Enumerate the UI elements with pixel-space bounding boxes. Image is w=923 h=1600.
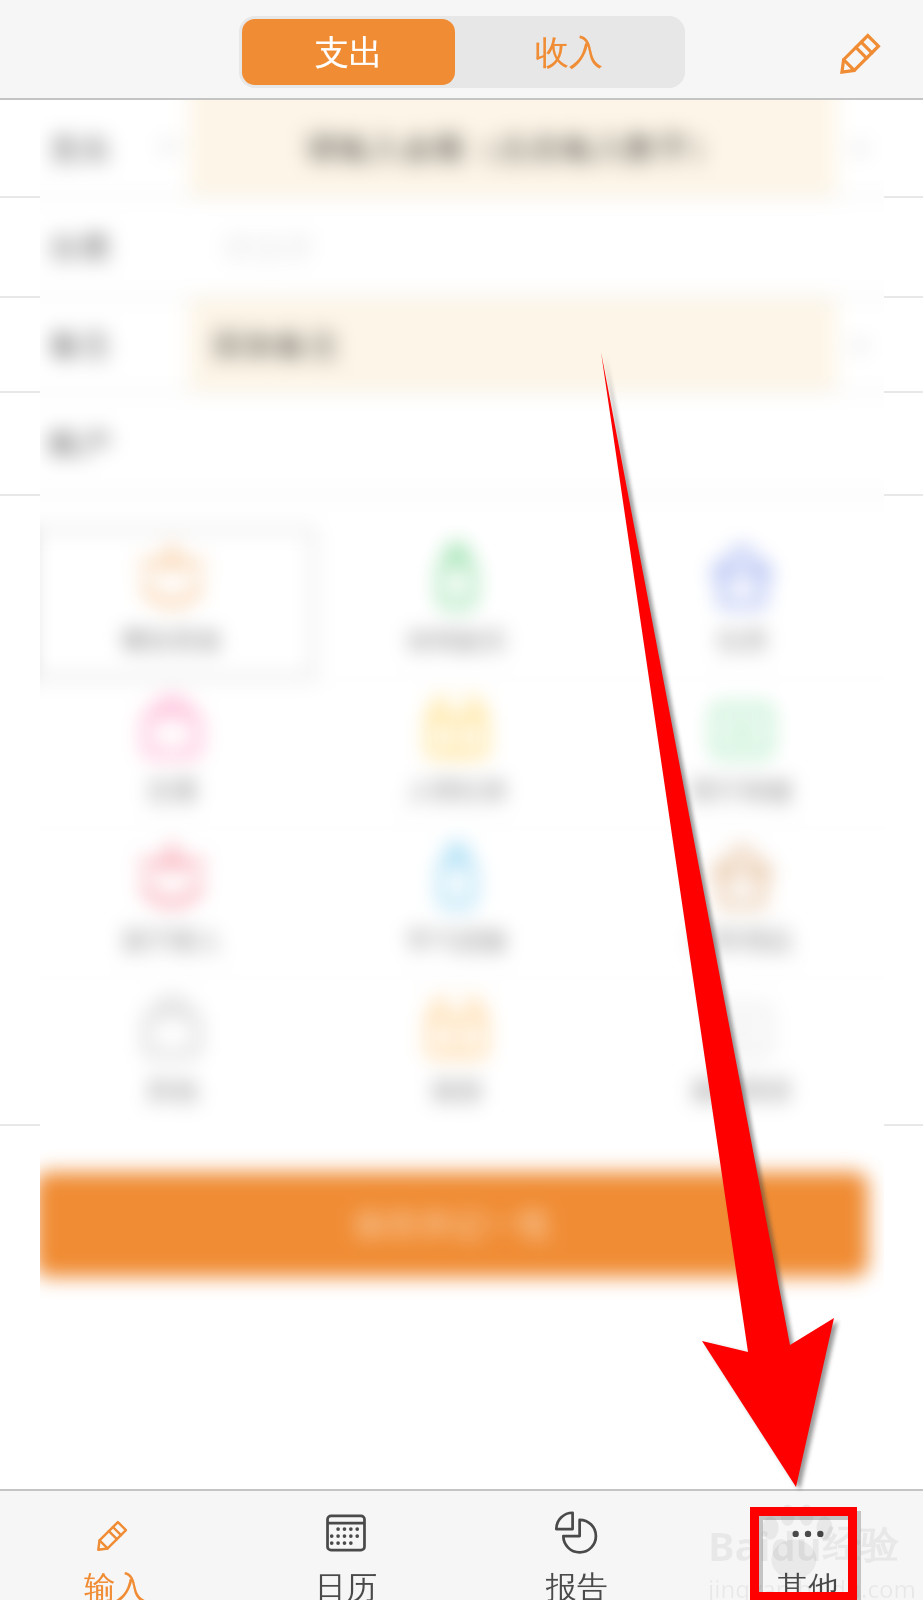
button[interactable]: 休闲娱乐 xyxy=(314,529,599,678)
staticText: 报告 xyxy=(546,1568,608,1600)
button[interactable]: 账户 xyxy=(40,393,884,494)
button[interactable]: 分类 xyxy=(40,198,884,296)
button[interactable]: 收入 xyxy=(455,19,682,85)
button[interactable]: 支出 xyxy=(40,100,884,196)
staticText: 请输入金额（点击输入数字） xyxy=(305,128,721,168)
staticText: 经验 xyxy=(822,1521,898,1569)
staticText: jingyan.baidu.com xyxy=(708,1572,916,1600)
staticText: 日常用品 xyxy=(692,925,792,956)
staticText: 交通 xyxy=(147,775,197,806)
staticText: 休闲娱乐 xyxy=(407,625,507,656)
staticText: 餐饮美食 xyxy=(122,625,222,656)
button[interactable]: 餐饮美食 xyxy=(40,529,314,678)
staticText: 学习进修 xyxy=(407,925,507,956)
staticText: 添加备注 xyxy=(211,325,339,365)
button[interactable]: 其他 xyxy=(692,1491,923,1600)
staticText: Baidu xyxy=(708,1518,822,1572)
button[interactable]: 旅游 xyxy=(314,979,599,1128)
button[interactable]: 医疗保健 xyxy=(599,679,884,828)
button[interactable]: 服饰美容 xyxy=(599,979,884,1128)
button[interactable]: 孩子家人 xyxy=(40,829,314,978)
staticText: 其他 xyxy=(777,1568,839,1600)
button[interactable]: 输入 xyxy=(0,1491,230,1600)
staticText: 其他 xyxy=(147,1075,197,1106)
staticText: 孩子家人 xyxy=(122,925,222,956)
staticText: 账户 xyxy=(49,424,111,463)
staticText: 服饰美容 xyxy=(692,1075,792,1106)
staticText: 支出 xyxy=(49,129,111,168)
button[interactable]: 日历 xyxy=(230,1491,461,1600)
staticText: 备注 xyxy=(49,325,111,364)
button[interactable]: 保存并记一笔 xyxy=(40,1172,868,1277)
button[interactable]: 交通 xyxy=(40,679,314,828)
staticText: 旅游 xyxy=(432,1075,482,1106)
staticText: 分类 xyxy=(49,228,111,267)
staticText: 保存并记一笔 xyxy=(353,1204,551,1246)
button[interactable]: 住房 xyxy=(599,529,884,678)
button[interactable]: 支出 xyxy=(242,19,455,85)
button[interactable]: 日常用品 xyxy=(599,829,884,978)
staticText: 收入 xyxy=(535,31,603,74)
button[interactable]: 备注 xyxy=(40,298,884,391)
staticText: 医疗保健 xyxy=(692,775,792,806)
staticText: 人情往来 xyxy=(407,775,507,806)
staticText: 支出 xyxy=(315,31,383,74)
staticText: 日历 xyxy=(315,1568,377,1600)
button[interactable]: 报告 xyxy=(461,1491,692,1600)
button[interactable]: 学习进修 xyxy=(314,829,599,978)
staticText: 输入 xyxy=(84,1568,146,1600)
button[interactable]: 人情往来 xyxy=(314,679,599,828)
button[interactable]: 其他 xyxy=(40,979,314,1128)
staticText: 住房 xyxy=(717,625,767,656)
button[interactable]: Edit xyxy=(819,5,909,95)
